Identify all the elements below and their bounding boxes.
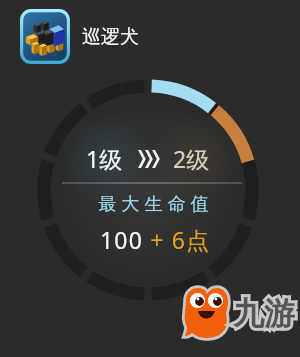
staticText: 1级	[86, 143, 123, 174]
staticText: 100 + 6点	[100, 224, 211, 255]
staticText: 巡逻犬	[82, 25, 139, 49]
staticText: 九游	[233, 294, 295, 333]
staticText: 2级	[173, 143, 210, 174]
button[interactable]: 巡逻犬 头像	[20, 9, 70, 64]
staticText: 最大生命值	[96, 193, 211, 216]
staticText: 九游	[233, 294, 295, 333]
